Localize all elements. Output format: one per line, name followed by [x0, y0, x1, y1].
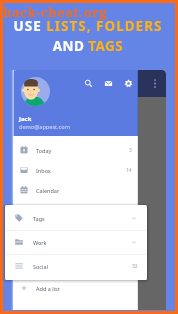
staticText: hack-cheat.org: [3, 4, 108, 21]
button[interactable]: Work: [5, 230, 147, 254]
staticText: Tags: [33, 215, 45, 222]
staticText: Add a list: [36, 285, 60, 292]
staticText: Social: [33, 263, 48, 270]
staticText: Work: [33, 239, 47, 246]
staticText: Jack: [19, 115, 32, 123]
staticText: 14: [126, 167, 132, 174]
button[interactable]: Search: [84, 79, 93, 88]
staticText: demo@appest.com: [19, 123, 70, 131]
staticText: Inbox: [36, 167, 51, 174]
staticText: 32: [132, 263, 138, 270]
button[interactable]: Inbox mail: [104, 79, 113, 88]
button[interactable]: Calendar: [13, 180, 138, 200]
button[interactable]: Add a list: [13, 278, 138, 298]
button[interactable]: Tags: [5, 206, 147, 230]
staticText: USE LISTS, FOLDERS AND TAGS: [2, 17, 174, 55]
button[interactable]: Inbox: [13, 160, 138, 180]
button[interactable]: Settings: [124, 79, 133, 88]
staticText: Calendar: [36, 187, 60, 194]
button[interactable]: Today: [13, 140, 138, 160]
staticText: Today: [36, 147, 52, 154]
staticText: 3: [129, 147, 132, 154]
button[interactable]: Social: [5, 254, 147, 278]
button[interactable]: More options: [154, 79, 156, 88]
